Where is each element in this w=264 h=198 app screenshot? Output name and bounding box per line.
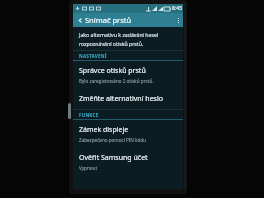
staticText: 8:43 — [172, 5, 182, 12]
staticText: Zabezpečeno pomocí PIN kódu — [79, 137, 146, 143]
staticText: Jako alternativu k zadávání hesel použij… — [79, 31, 177, 38]
staticText: rozpoznávání otisků prstů. — [79, 40, 144, 47]
button[interactable]: More options — [174, 13, 183, 27]
staticText: Správce otisků prstů — [79, 66, 146, 76]
button[interactable]: Správce otisků prstů — [73, 61, 183, 89]
staticText: Zámek displeje — [79, 125, 129, 135]
button[interactable]: Ověřit Samsung účet — [73, 148, 183, 176]
staticText: Bylo zaregistrováno 2 otisků prstů. — [79, 78, 154, 84]
staticText: Změňte alternativní heslo — [79, 94, 163, 104]
staticText: Vypnout — [79, 165, 98, 171]
staticText: NASTAVENÍ — [79, 53, 107, 59]
staticText: Ověřit Samsung účet — [79, 153, 148, 163]
button[interactable]: Zámek displeje — [73, 120, 183, 148]
button[interactable]: Změňte alternativní heslo — [73, 89, 183, 109]
staticText: Snímač prstů — [85, 15, 174, 25]
button[interactable]: Back — [76, 13, 84, 27]
staticText: FUNKCE — [79, 112, 99, 118]
